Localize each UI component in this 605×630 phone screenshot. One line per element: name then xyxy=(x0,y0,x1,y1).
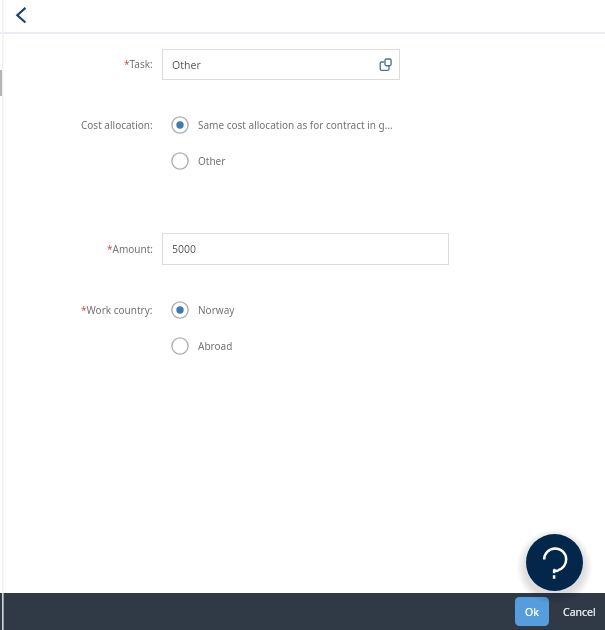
staticText: Cancel xyxy=(563,605,596,619)
staticText: Other xyxy=(198,154,226,168)
button[interactable]: Abroad xyxy=(171,335,233,357)
button[interactable]: Same cost allocation as for contract in … xyxy=(171,114,393,136)
staticText: Abroad xyxy=(198,339,233,353)
button[interactable]: Back xyxy=(5,0,36,31)
staticText: 5000 xyxy=(172,242,197,256)
staticText: Norway xyxy=(198,303,235,317)
button[interactable]: Norway xyxy=(171,299,235,321)
staticText: Ok xyxy=(525,605,539,619)
button[interactable]: Help xyxy=(526,534,583,591)
staticText: Other xyxy=(172,58,201,72)
button[interactable]: Ok xyxy=(515,597,549,626)
staticText: *Work country: xyxy=(81,303,153,317)
staticText: Cost allocation: xyxy=(81,118,153,132)
staticText: *Amount: xyxy=(107,242,153,256)
button[interactable]: Value help xyxy=(378,57,392,71)
button[interactable]: Other xyxy=(171,150,226,172)
button[interactable]: Other xyxy=(162,49,400,80)
button[interactable]: Cancel xyxy=(560,599,599,625)
staticText: Same cost allocation as for contract in … xyxy=(198,118,393,132)
button[interactable]: 5000 xyxy=(162,233,449,265)
staticText: *Task: xyxy=(124,57,153,71)
